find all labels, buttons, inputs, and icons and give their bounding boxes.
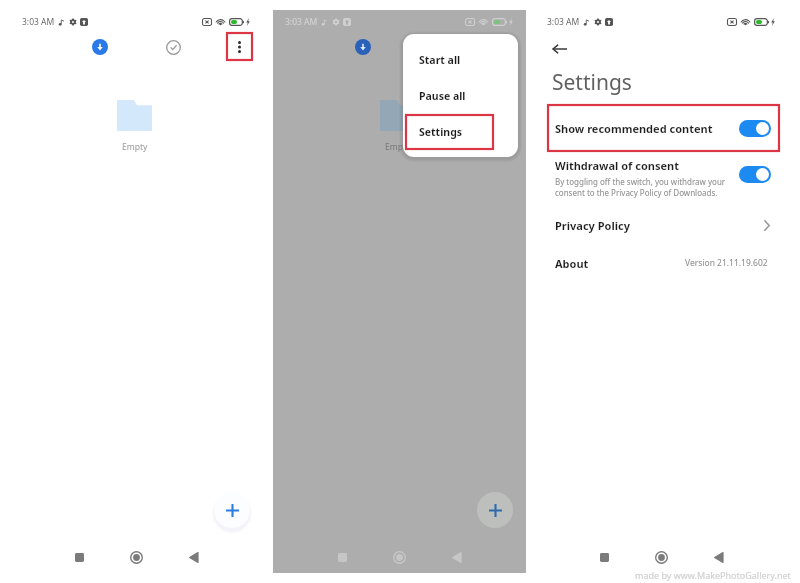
button[interactable]: More options <box>227 33 252 60</box>
staticText: 3:03 AM <box>547 16 580 28</box>
staticText: made by www.MakePhotoGallery.net <box>635 569 791 581</box>
button[interactable]: Home <box>386 544 413 571</box>
button[interactable]: Back <box>443 544 470 571</box>
staticText: Version 21.11.19.602 <box>685 257 768 269</box>
staticText: By toggling off the switch, you withdraw… <box>555 176 735 198</box>
button[interactable]: Home <box>648 544 675 571</box>
staticText: 3:03 AM <box>22 16 55 28</box>
button[interactable]: Home <box>123 544 150 571</box>
staticText: About <box>555 256 589 271</box>
staticText: Privacy Policy <box>555 218 630 233</box>
button[interactable]: Start all <box>403 48 518 71</box>
staticText: 3:03 AM <box>285 16 318 28</box>
button[interactable]: Recents <box>591 544 618 571</box>
staticText: Show recommended content <box>555 121 713 136</box>
button[interactable]: Show recommended content <box>535 105 788 151</box>
button[interactable]: Recents <box>66 544 93 571</box>
button[interactable]: Back <box>180 544 207 571</box>
button[interactable]: Toggle <box>739 166 771 183</box>
button[interactable]: Recents <box>329 544 356 571</box>
button[interactable]: Toggle <box>739 120 771 137</box>
staticText: Settings <box>552 68 632 97</box>
button[interactable]: Download <box>92 39 108 55</box>
staticText: Start all <box>419 53 461 67</box>
staticText: Settings <box>419 125 463 139</box>
staticText: Empty <box>385 141 411 153</box>
staticText: Withdrawal of consent <box>555 158 679 173</box>
button[interactable]: Privacy Policy <box>535 211 788 239</box>
staticText: Pause all <box>419 89 466 103</box>
button[interactable]: Add download <box>214 492 250 528</box>
button[interactable]: Back <box>547 37 571 61</box>
button[interactable]: Select all <box>165 39 181 55</box>
staticText: Empty <box>122 141 148 153</box>
button[interactable]: Back <box>705 544 732 571</box>
button[interactable]: Pause all <box>403 84 518 107</box>
button[interactable]: Settings <box>403 120 518 143</box>
button[interactable]: About <box>535 249 788 277</box>
